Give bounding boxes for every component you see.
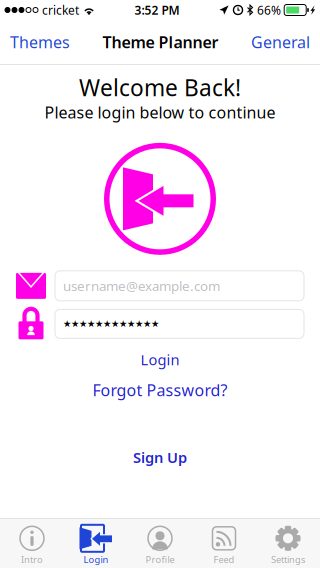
- staticText: ★★★★★★★★★★★★: [63, 319, 159, 329]
- button[interactable]: Sign Up: [121, 445, 199, 470]
- button[interactable]: Login: [128, 347, 191, 372]
- button[interactable]: ★★★★★★★★★★★★: [55, 309, 304, 338]
- staticText: Settings: [271, 553, 305, 566]
- button[interactable]: Feed: [192, 519, 256, 568]
- staticText: username@example.com: [63, 277, 220, 295]
- staticText: Profile: [145, 553, 174, 566]
- button[interactable]: username@example.com: [55, 271, 304, 301]
- button[interactable]: General: [243, 20, 318, 64]
- button[interactable]: Settings: [256, 519, 320, 568]
- staticText: Forgot Password?: [92, 379, 227, 400]
- staticText: cricket: [42, 2, 79, 18]
- staticText: Theme Planner: [102, 31, 218, 53]
- staticText: 66%: [257, 2, 281, 18]
- button[interactable]: Intro: [0, 519, 64, 568]
- staticText: Login: [83, 553, 108, 566]
- button[interactable]: Profile: [128, 519, 192, 568]
- staticText: Welcome Back!: [79, 72, 241, 103]
- button[interactable]: Login: [64, 519, 128, 568]
- staticText: Intro: [21, 553, 43, 566]
- staticText: Login: [140, 350, 179, 369]
- button[interactable]: Forgot Password?: [80, 376, 239, 403]
- staticText: General: [251, 31, 310, 53]
- staticText: Sign Up: [133, 448, 187, 467]
- staticText: Please login below to continue: [44, 102, 275, 123]
- staticText: Themes: [10, 31, 70, 53]
- button[interactable]: Themes: [2, 20, 78, 64]
- staticText: Feed: [213, 553, 234, 566]
- staticText: 3:52 PM: [134, 2, 179, 18]
